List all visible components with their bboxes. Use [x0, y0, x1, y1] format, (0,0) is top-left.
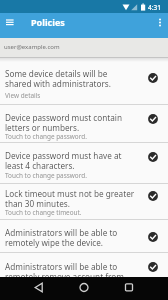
button[interactable]	[121, 279, 137, 297]
button[interactable]	[154, 15, 166, 35]
button[interactable]: Administrators will be able to remotely …	[0, 252, 168, 277]
staticText: 4:31	[148, 3, 161, 12]
button[interactable]: Device password must have at least 4 cha…	[0, 142, 168, 184]
staticText: user@example.com	[4, 43, 60, 51]
staticText: View details	[5, 91, 41, 100]
button[interactable]: Some device details will be shared with …	[0, 58, 168, 104]
staticText: Touch to change password.	[5, 171, 87, 180]
staticText: Administrators will be able to remotely …	[5, 261, 124, 282]
staticText: Some device details will be shared with …	[5, 68, 111, 89]
staticText: Touch to change password.	[5, 132, 87, 141]
staticText: Touch to change timeout.	[5, 208, 82, 217]
button[interactable]: Lock timeout must not be greater than 30…	[0, 184, 168, 220]
button[interactable]	[76, 279, 92, 297]
staticText: Lock timeout must not be greater than 30…	[5, 188, 135, 209]
staticText: Device password must have at least 4 cha…	[5, 150, 122, 171]
staticText: Device password must contain letters or …	[5, 112, 123, 133]
staticText: Policies	[31, 16, 65, 28]
button[interactable]: Administrators will be able to remotely …	[0, 220, 168, 252]
button[interactable]	[3, 16, 17, 30]
button[interactable]: user@example.com	[0, 38, 168, 57]
button[interactable]: Device password must contain letters or …	[0, 104, 168, 142]
staticText: Administrators will be able to remotely …	[5, 227, 118, 248]
button[interactable]	[31, 279, 47, 297]
